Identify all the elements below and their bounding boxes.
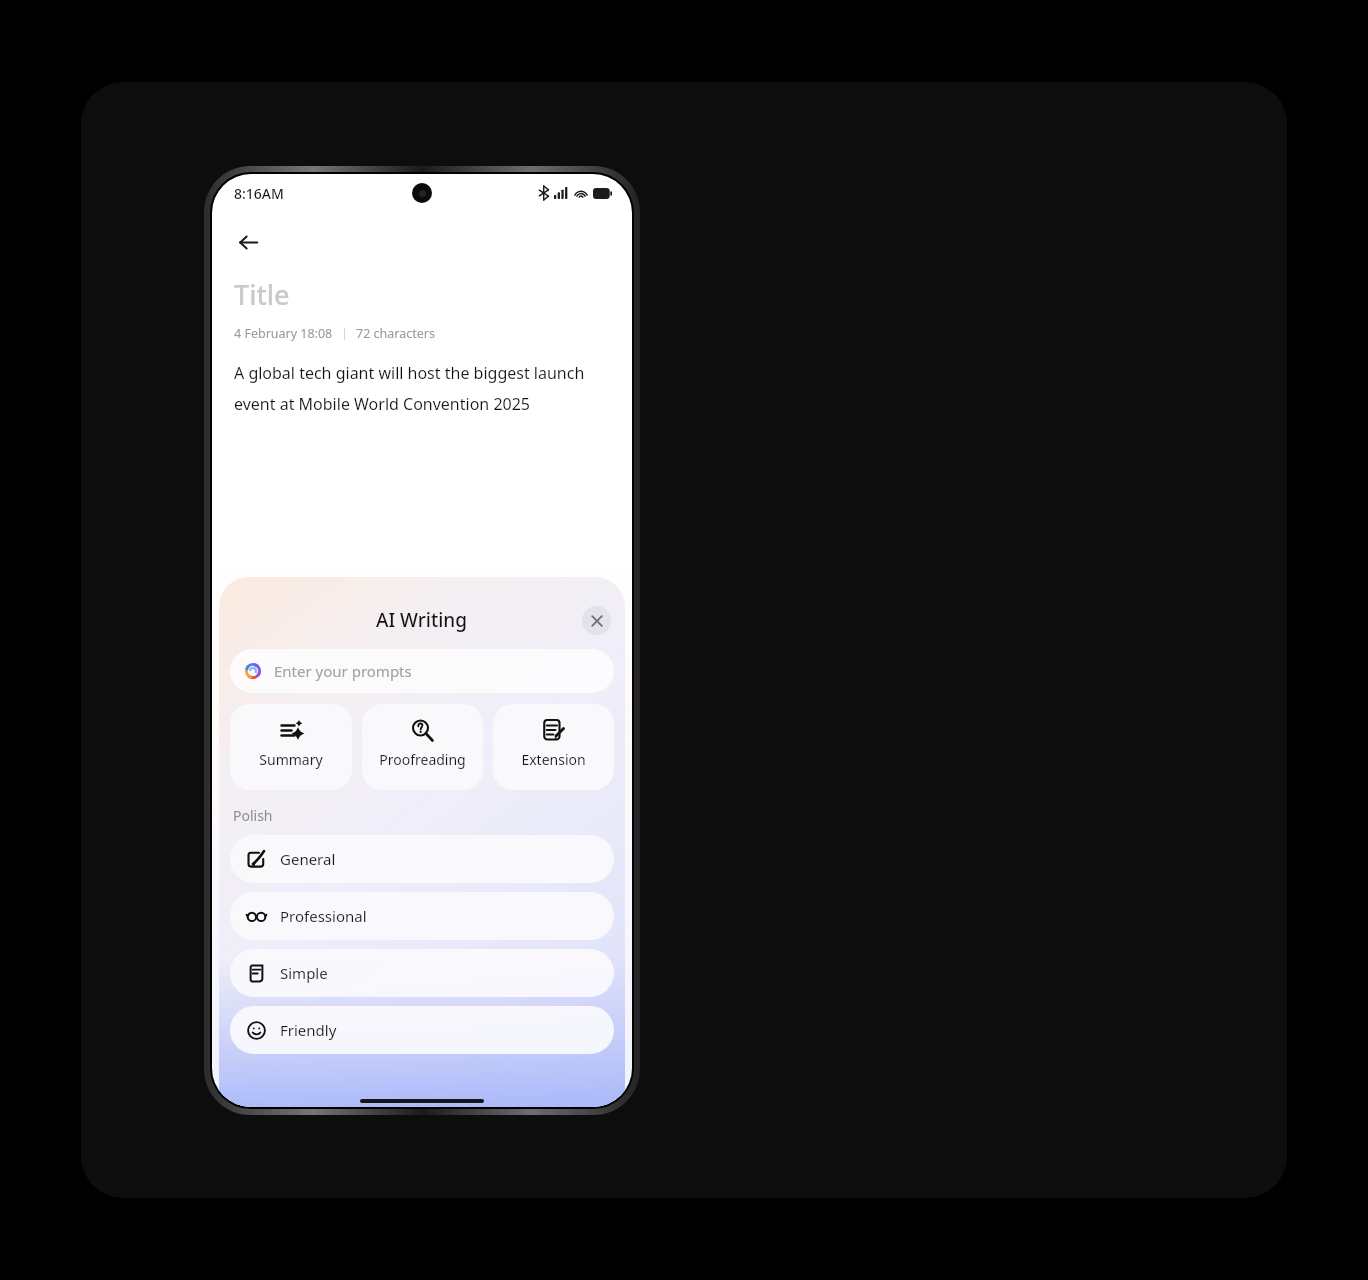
staticText: Summary — [259, 750, 323, 769]
staticText: Polish — [233, 806, 273, 825]
button[interactable]: Summary — [230, 704, 352, 790]
staticText: Friendly — [280, 1020, 337, 1040]
button[interactable]: Simple — [230, 949, 614, 997]
button[interactable]: Professional — [230, 892, 614, 940]
button[interactable]: Friendly — [230, 1006, 614, 1054]
staticText: Extension — [521, 750, 586, 769]
staticText: 8:16AM — [234, 184, 284, 203]
staticText: Simple — [280, 963, 328, 983]
staticText: 72 characters — [356, 325, 435, 342]
button[interactable]: Enter your prompts — [230, 649, 614, 693]
button[interactable]: Proofreading — [362, 704, 483, 790]
staticText: Professional — [280, 906, 367, 926]
button[interactable]: Back — [226, 220, 270, 264]
staticText: 4 February 18:08 — [234, 325, 333, 342]
staticText: AI Writing — [376, 607, 468, 633]
button[interactable]: Extension — [493, 704, 614, 790]
button[interactable]: General — [230, 835, 614, 883]
staticText: General — [280, 849, 336, 869]
staticText: A global tech giant will host the bigges… — [234, 362, 602, 415]
button[interactable]: Close — [582, 606, 611, 635]
staticText: Title — [234, 276, 290, 313]
staticText: Enter your prompts — [274, 661, 412, 681]
staticText: Proofreading — [379, 750, 466, 769]
